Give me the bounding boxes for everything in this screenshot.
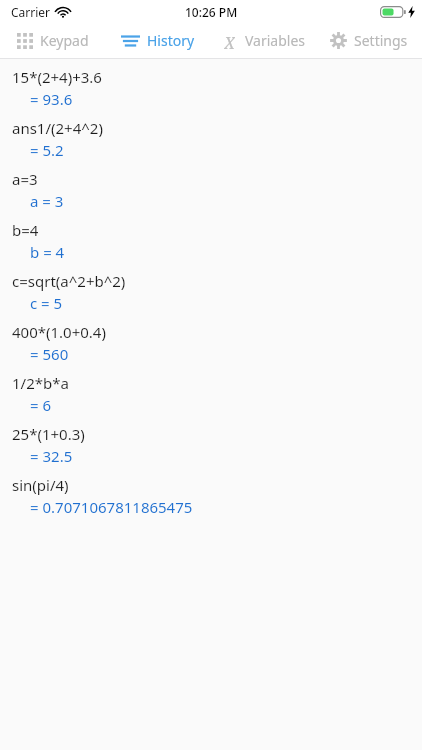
staticText: = 6 [30, 395, 52, 415]
staticText: 400*(1.0+0.4) [12, 322, 106, 342]
staticText: c=sqrt(a^2+b^2) [12, 271, 126, 291]
button[interactable]: Keypad [0, 23, 105, 58]
staticText: = 0.7071067811865475 [30, 497, 193, 517]
staticText: a=3 [12, 169, 38, 189]
button[interactable]: b=4 [0, 220, 422, 271]
staticText: 25*(1+0.3) [12, 424, 85, 444]
staticText: sin(pi/4) [12, 475, 69, 495]
button[interactable]: 25*(1+0.3) [0, 424, 422, 475]
staticText: a = 3 [30, 191, 64, 211]
button[interactable]: Variables [210, 23, 316, 58]
staticText: Variables [245, 31, 306, 50]
staticText: b=4 [12, 220, 39, 240]
staticText: ans1/(2+4^2) [12, 118, 103, 138]
staticText: 15*(2+4)+3.6 [12, 67, 102, 87]
other: Keypad [17, 33, 33, 49]
staticText: X [224, 32, 235, 49]
staticText: History [147, 31, 195, 50]
staticText: = 32.5 [30, 446, 73, 466]
staticText: b = 4 [30, 242, 65, 262]
button[interactable]: History [105, 23, 210, 58]
staticText: 1/2*b*a [12, 373, 69, 393]
staticText: Settings [354, 31, 408, 50]
staticText: Keypad [40, 31, 89, 50]
button[interactable]: c=sqrt(a^2+b^2) [0, 271, 422, 322]
staticText: 10:26 PM [185, 4, 238, 20]
staticText: = 5.2 [30, 140, 64, 160]
button[interactable]: 400*(1.0+0.4) [0, 322, 422, 373]
staticText: = 560 [30, 344, 69, 364]
other: History [121, 34, 140, 48]
button[interactable]: sin(pi/4) [0, 475, 422, 526]
staticText: Carrier [11, 4, 51, 20]
button[interactable]: Settings [316, 23, 422, 58]
button[interactable]: ans1/(2+4^2) [0, 118, 422, 169]
other: Settings [330, 32, 347, 49]
button[interactable]: 1/2*b*a [0, 373, 422, 424]
staticText: = 93.6 [30, 89, 73, 109]
staticText: c = 5 [30, 293, 63, 313]
button[interactable]: a=3 [0, 169, 422, 220]
other: Variables [221, 32, 238, 49]
button[interactable]: 15*(2+4)+3.6 [0, 67, 422, 118]
